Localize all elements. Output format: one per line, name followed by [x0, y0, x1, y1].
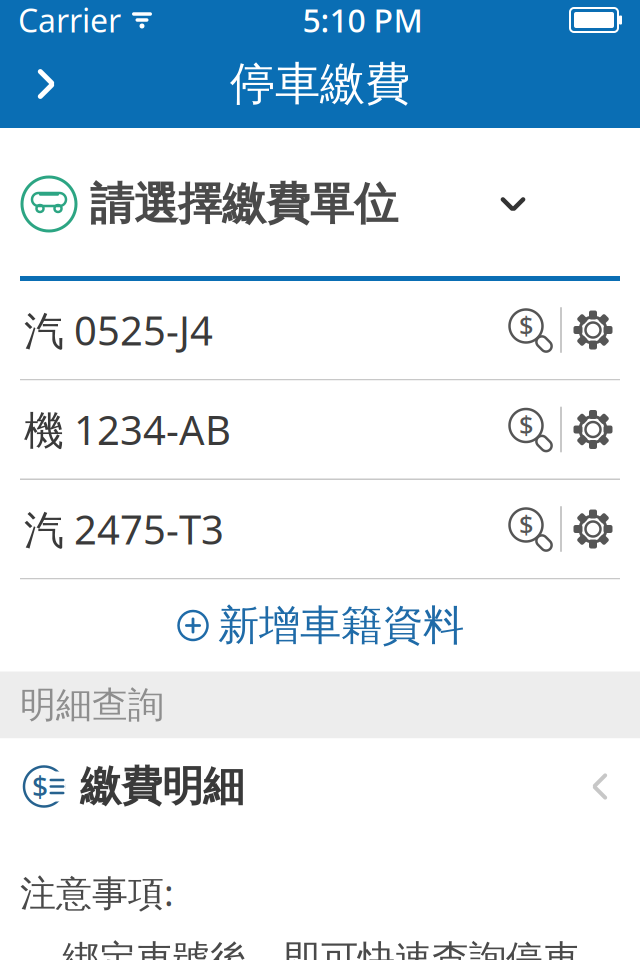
button[interactable]: 請選擇繳費單位 — [0, 156, 640, 252]
staticText: 汽 2475-T3 — [24, 502, 224, 555]
button[interactable]: 設定 汽 2475-T3 — [562, 487, 624, 571]
staticText: 汽 0525-J4 — [24, 303, 213, 356]
staticText: $ — [519, 308, 533, 342]
button[interactable]: 查詢停車費 汽 2475-T3 — [498, 487, 560, 571]
staticText: $ — [32, 768, 48, 805]
staticText: $ — [519, 507, 533, 541]
button[interactable]: 返回 — [10, 48, 82, 120]
staticText: 綁定車號後，即可快速查詢停車費，系統將主動追蹤並以推播方式提醒待繳停車費。 — [62, 936, 580, 960]
staticText: 新增車籍資料 — [218, 600, 464, 651]
button[interactable]: $ — [0, 738, 640, 834]
staticText: 5:10 PM — [302, 0, 422, 41]
button[interactable]: 查詢停車費 汽 0525-J4 — [498, 288, 560, 372]
staticText: Carrier — [18, 0, 121, 41]
button[interactable]: 查詢停車費 機 1234-AB — [498, 387, 560, 471]
button[interactable]: 新增車籍資料 — [0, 579, 640, 671]
staticText: 注意事項: — [20, 868, 174, 916]
button[interactable]: 設定 汽 0525-J4 — [562, 288, 624, 372]
button[interactable]: 設定 機 1234-AB — [562, 387, 624, 471]
staticText: 機 1234-AB — [24, 403, 231, 456]
staticText: 停車繳費 — [230, 56, 410, 112]
staticText: $ — [519, 408, 533, 441]
staticText: 繳費明細 — [80, 761, 244, 812]
staticText: 請選擇繳費單位 — [90, 177, 398, 231]
staticText: 明細查詢 — [20, 683, 164, 727]
